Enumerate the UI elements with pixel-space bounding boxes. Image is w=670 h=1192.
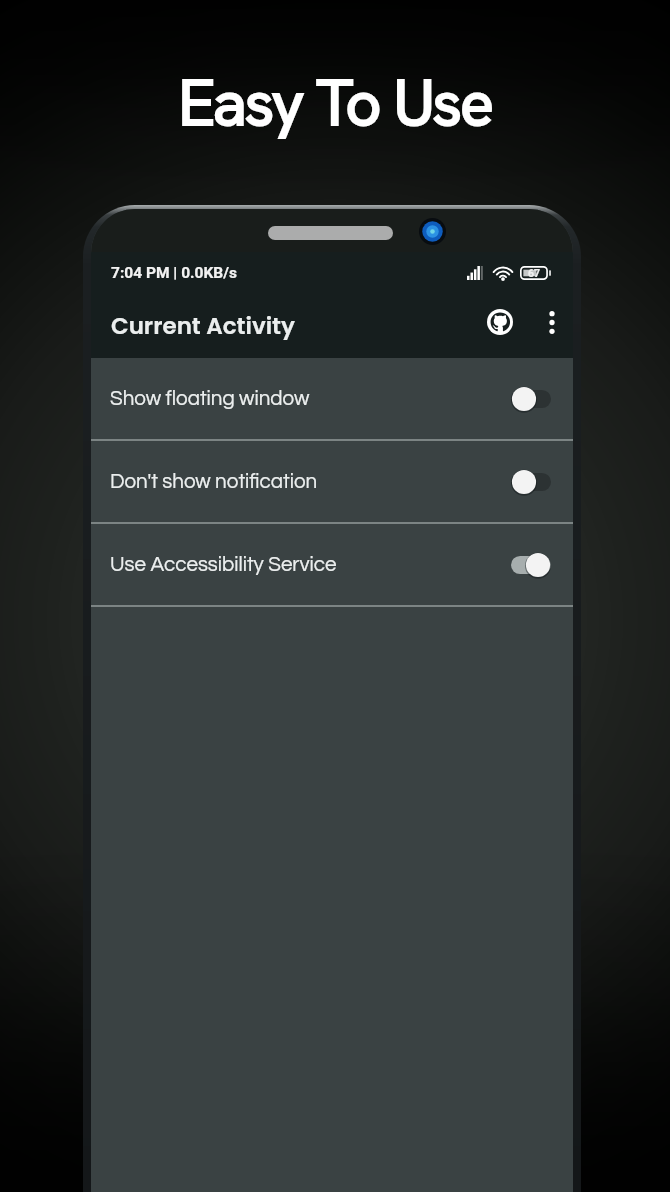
button[interactable]: GitHub [477,299,523,345]
staticText: Show floating window [110,388,511,409]
staticText: 7:04 PM | 0.0KB/s [111,264,237,282]
staticText: Easy To Use [178,62,492,144]
staticText: Use Accessibility Service [110,554,511,575]
button[interactable]: Use Accessibility Service [91,524,573,607]
button[interactable]: More options [536,299,568,345]
button[interactable]: Show floating window [91,358,573,441]
staticText: Current Activity [111,310,477,342]
staticText: 67 [528,267,541,279]
staticText: Don't show notification [110,471,511,492]
button[interactable]: Don't show notification [91,441,573,524]
